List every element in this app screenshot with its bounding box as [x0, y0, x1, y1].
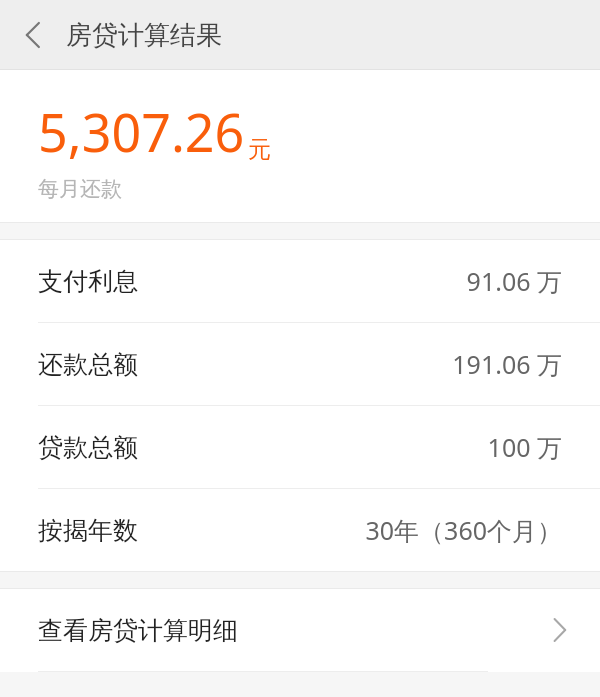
staticText: 查看房贷计算明细 — [38, 615, 238, 646]
staticText: 房贷计算结果 — [66, 19, 222, 52]
staticText: 元 — [248, 135, 271, 164]
staticText: 还款总额 — [38, 349, 138, 380]
button[interactable]: 贷款总额 — [0, 406, 600, 488]
staticText: 91.06 万 — [466, 264, 562, 298]
staticText: 100 万 — [487, 430, 562, 464]
staticText: 191.06 万 — [452, 347, 562, 381]
staticText: 贷款总额 — [38, 432, 138, 463]
staticText: 30年（360个月） — [365, 513, 562, 547]
button[interactable]: 还款总额 — [0, 323, 600, 405]
button[interactable]: 按揭年数 — [0, 489, 600, 571]
staticText: 支付利息 — [38, 266, 138, 297]
staticText: 每月还款 — [38, 176, 122, 202]
button[interactable]: 查看房贷计算明细 — [0, 589, 600, 671]
button[interactable]: 返回 — [10, 12, 56, 58]
button[interactable]: 支付利息 — [0, 240, 600, 322]
staticText: 按揭年数 — [38, 515, 138, 546]
staticText: 5,307.26 — [38, 96, 245, 167]
